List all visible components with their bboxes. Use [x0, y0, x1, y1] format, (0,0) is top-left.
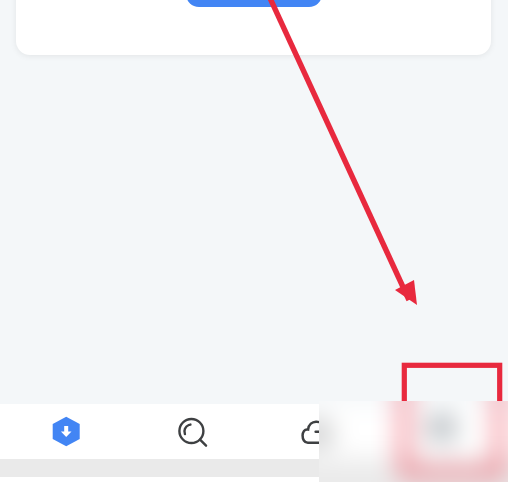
button[interactable]: Account: [380, 404, 504, 459]
button[interactable]: Install: [186, 0, 322, 7]
button[interactable]: Downloads: [4, 404, 128, 459]
button[interactable]: Cloud: [255, 404, 379, 459]
button[interactable]: Search: [129, 404, 253, 459]
